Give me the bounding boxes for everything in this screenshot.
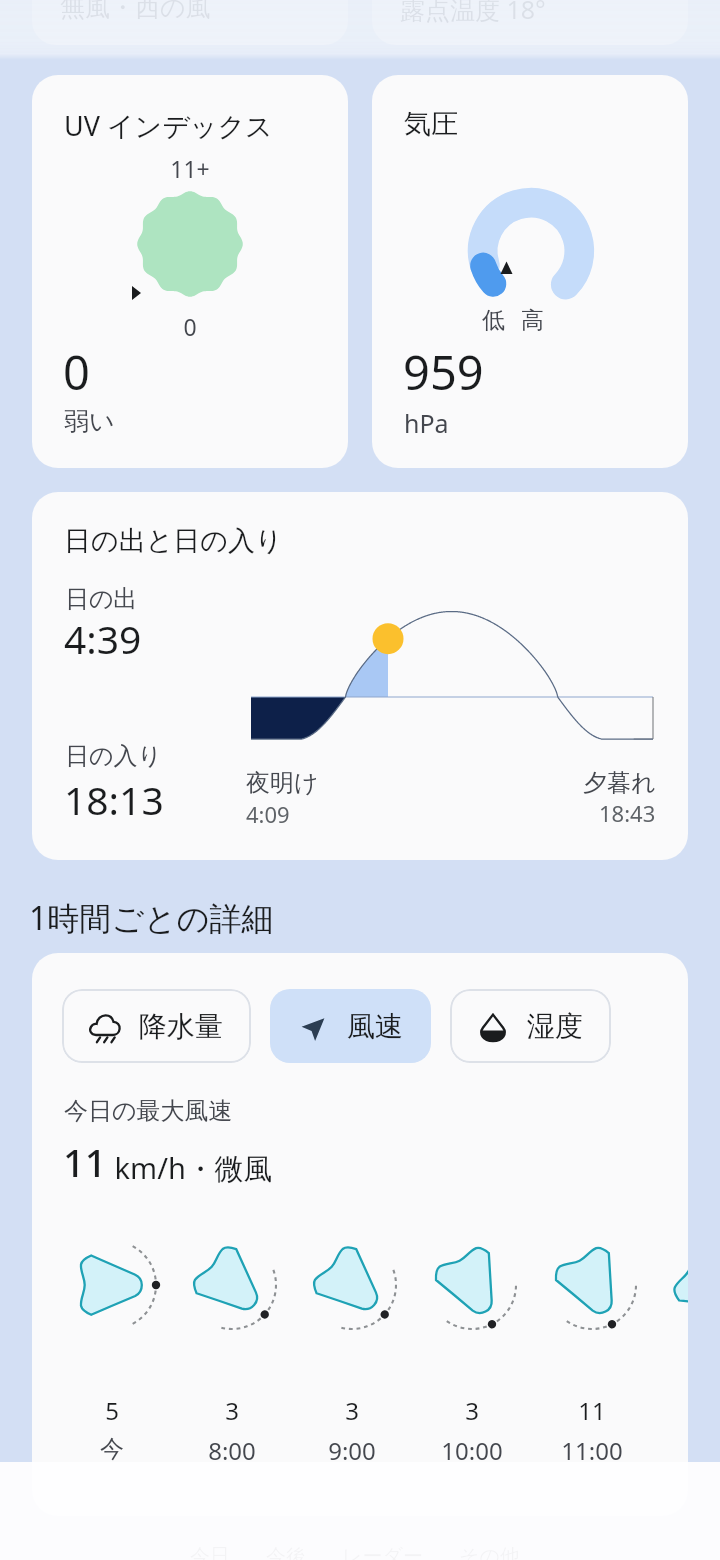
staticText: 3 [412,1394,532,1427]
staticText: km/h・微風 [107,1148,273,1188]
staticText: 降水量 [139,1009,223,1044]
staticText: 0 [32,311,348,342]
staticText: 露点温度 18° [400,0,546,26]
staticText: 0 [63,340,90,404]
staticText: 3 [292,1394,412,1427]
staticText: 無風・西の風 [60,0,211,23]
button[interactable]: 露点温度 18° [372,0,688,45]
staticText: 4:39 [64,612,142,665]
staticText: 高 [521,306,544,335]
staticText: 5 [52,1394,172,1427]
button[interactable]: 湿度 [450,989,611,1063]
button[interactable]: 日の出と日の入り [32,492,688,860]
staticText: 低 [482,306,505,335]
button[interactable]: UV インデックス [32,75,348,468]
staticText: 今日の最大風速 [64,1096,233,1126]
staticText: 気圧 [404,107,458,141]
staticText: 今 [52,1434,172,1464]
staticText: 弱い [64,406,115,437]
staticText: hPa [404,406,449,440]
button[interactable]: 無風・西の風 [32,0,348,45]
button[interactable]: 降水量 [62,989,251,1063]
staticText: 18:43 [599,798,656,828]
staticText: UV インデックス [64,107,273,144]
staticText: 4:09 [246,799,290,829]
staticText: 1時間ごとの詳細 [29,896,274,940]
staticText: 夜明け [246,768,319,798]
staticText: 風速 [347,1009,403,1044]
button[interactable]: 風速 [270,989,431,1063]
staticText: 959 [403,340,484,404]
staticText: 日の入り [65,741,163,771]
staticText: 日の出と日の入り [64,524,283,558]
staticText: 10:00 [412,1434,532,1467]
staticText: 11 [63,1136,107,1188]
staticText: 湿度 [527,1009,583,1044]
staticText: 夕暮れ [583,768,656,798]
staticText: 18:13 [64,773,164,826]
staticText: 11:00 [532,1434,652,1467]
staticText: 3 [172,1394,292,1427]
staticText: 11+ [32,153,348,184]
staticText: 9:00 [292,1434,412,1467]
button[interactable]: 気圧 [372,75,688,468]
staticText: 8:00 [172,1434,292,1467]
staticText: 11 [532,1394,652,1427]
staticText: 日の出 [65,584,138,614]
